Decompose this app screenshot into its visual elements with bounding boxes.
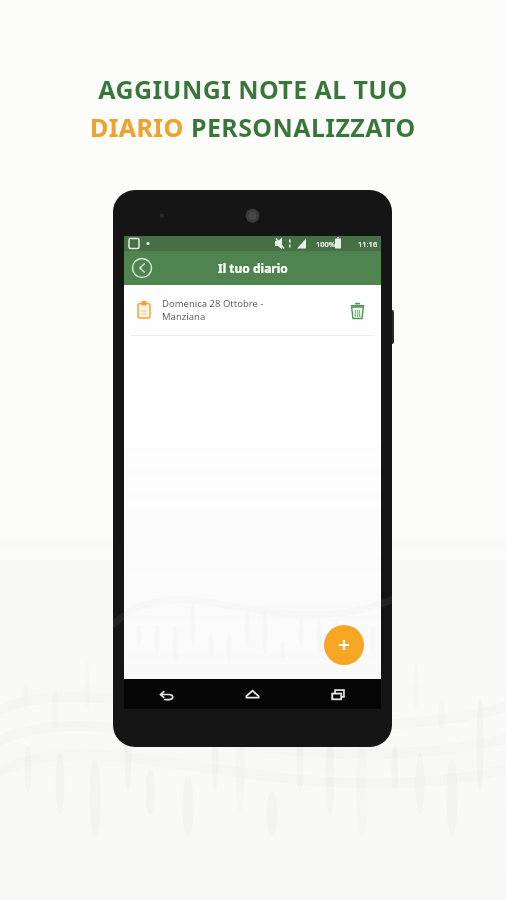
button[interactable]: Domenica 28 Ottobre - Manziana [124,285,381,335]
button[interactable]: Recenti [295,679,381,709]
staticText: Il tuo diario [218,260,288,276]
button[interactable]: Indietro [124,679,209,709]
staticText: AGGIUNGI NOTE AL TUO [98,72,408,106]
button[interactable]: Elimina [346,299,368,321]
staticText: 100% [316,239,336,249]
staticText: 11:16 [358,239,378,249]
button[interactable]: Aggiungi nota [324,625,364,665]
button[interactable]: Home [209,679,295,709]
staticText: Domenica 28 Ottobre - Manziana [162,297,346,323]
staticText: DIARIO [90,110,191,144]
staticText: PERSONALIZZATO [191,110,416,144]
button[interactable]: Indietro [131,257,153,279]
